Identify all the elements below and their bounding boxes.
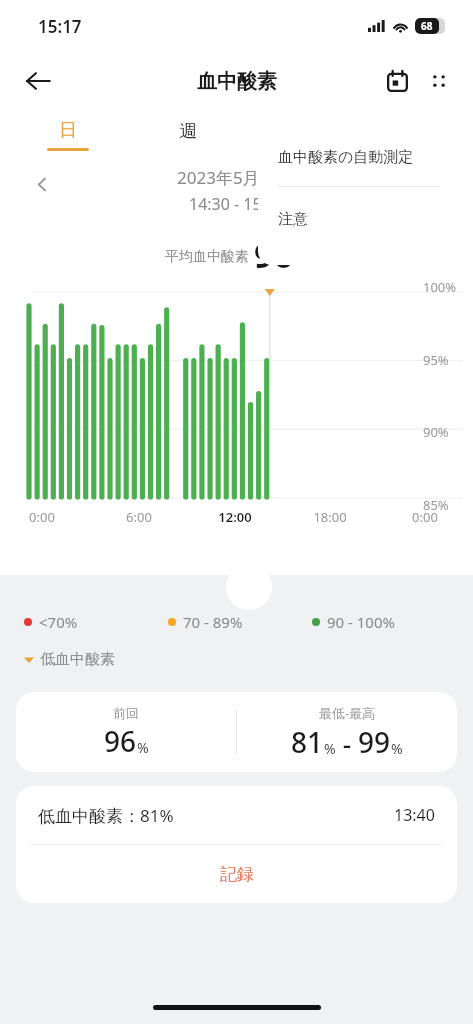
staticText: %	[324, 739, 336, 758]
staticText: 平均血中酸素	[165, 248, 249, 266]
staticText: 90 - 100%	[327, 612, 395, 632]
staticText: 血中酸素の自動測定	[278, 148, 414, 167]
staticText: 最低-最高	[319, 704, 376, 722]
staticText: 6:00	[113, 508, 165, 526]
button[interactable]: 低血中酸素	[24, 650, 449, 669]
button[interactable]: 記録	[16, 845, 457, 903]
button[interactable]: 日	[0, 110, 135, 160]
staticText: 週	[179, 120, 197, 143]
staticText: 100%	[423, 278, 457, 296]
staticText: 0:00	[16, 508, 68, 526]
button[interactable]: 前回	[16, 692, 457, 772]
button[interactable]: 注意	[258, 187, 460, 251]
staticText: 14:30 - 15:00	[189, 193, 285, 215]
staticText: 13:40	[394, 804, 435, 826]
button[interactable]: 低血中酸素：81%	[16, 786, 457, 844]
staticText: 0:00	[399, 508, 451, 526]
staticText: 85%	[423, 496, 449, 514]
button[interactable]: Back	[14, 57, 62, 105]
staticText: 2023年5月16日	[177, 166, 297, 189]
staticText: <70%	[39, 612, 78, 632]
staticText: 99	[358, 723, 391, 761]
staticText: %	[137, 738, 149, 757]
staticText: -	[336, 726, 358, 761]
staticText: 低血中酸素	[40, 650, 115, 669]
button[interactable]: 週	[135, 110, 240, 160]
staticText: 96	[254, 232, 293, 272]
staticText: 注意	[278, 210, 308, 229]
staticText: %	[391, 739, 403, 758]
staticText: 血中酸素	[197, 69, 277, 94]
staticText: 15:17	[38, 15, 82, 38]
staticText: 12:00	[209, 508, 261, 526]
staticText: 記録	[220, 864, 254, 885]
staticText: 70 - 89%	[183, 612, 243, 632]
staticText: 95%	[423, 351, 449, 369]
button[interactable]: 血中酸素の自動測定	[258, 128, 460, 186]
staticText: 日	[59, 119, 77, 142]
staticText: 前回	[113, 705, 139, 721]
button[interactable]: Calendar	[375, 59, 419, 103]
staticText: 68	[421, 19, 433, 33]
staticText: 81	[291, 723, 324, 761]
button[interactable]: More options	[419, 61, 459, 101]
button[interactable]: Previous day	[24, 166, 60, 202]
staticText: 低血中酸素：81%	[38, 804, 174, 827]
staticText: 90%	[423, 423, 449, 441]
staticText: 18:00	[304, 508, 356, 526]
staticText: 96	[104, 722, 137, 760]
